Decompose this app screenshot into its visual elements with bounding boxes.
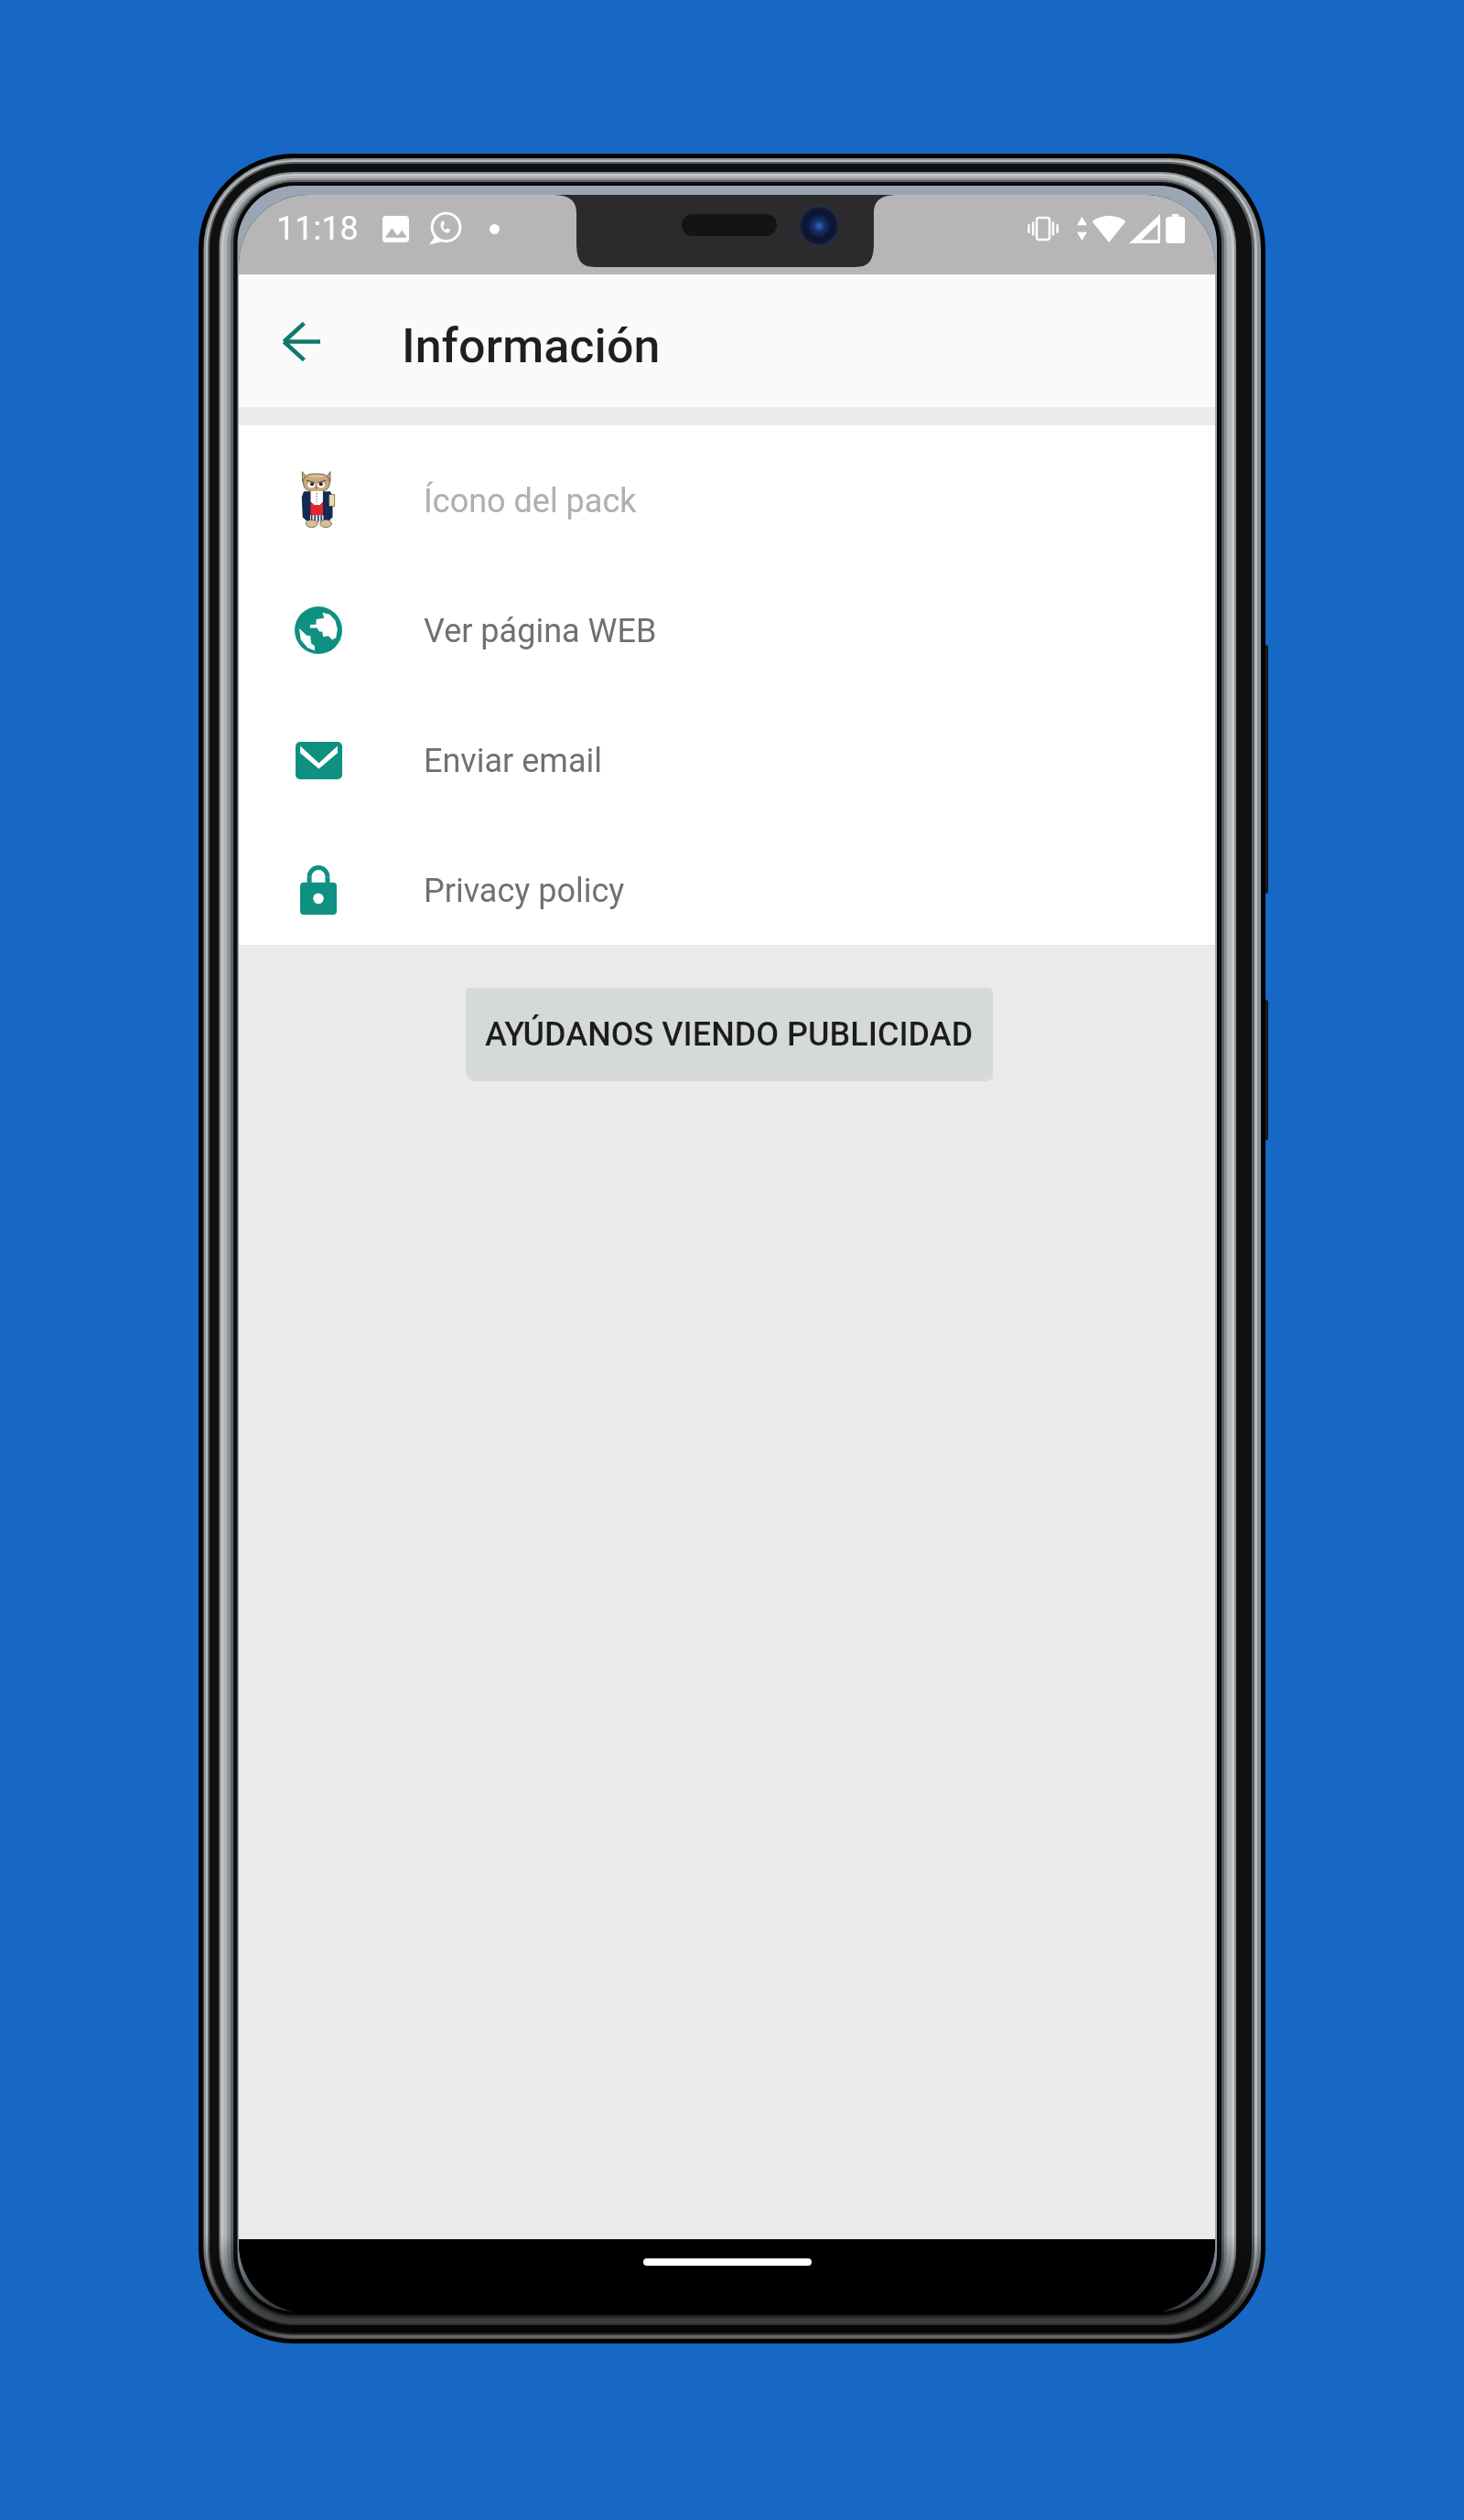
button[interactable]: AYÚDANOS VIENDO PUBLICIDAD — [466, 988, 993, 1077]
button[interactable]: Privacy policy — [239, 815, 1215, 945]
staticText: 11:18 — [276, 209, 359, 248]
staticText: AYÚDANOS VIENDO PUBLICIDAD — [485, 1015, 974, 1054]
staticText: Ícono del pack — [424, 482, 637, 520]
button[interactable]: Ver página WEB — [239, 555, 1215, 685]
staticText: Enviar email — [424, 742, 602, 780]
button[interactable]: Enviar email — [239, 685, 1215, 815]
button[interactable]: Back — [257, 297, 345, 385]
staticText: Ver página WEB — [424, 612, 657, 650]
staticText: Privacy policy — [424, 872, 625, 910]
button[interactable]: Ícono del pack — [239, 425, 1215, 555]
staticText: Información — [402, 318, 661, 374]
